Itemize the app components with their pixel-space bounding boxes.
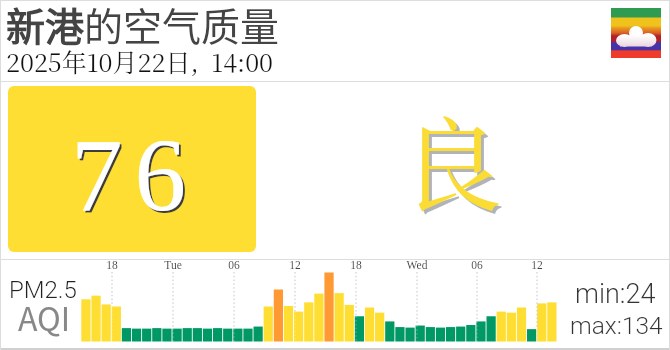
staticText: 06 [452,259,502,272]
staticText: Wed [392,259,442,272]
button[interactable]: aqicn.org logo [611,8,661,58]
staticText: 良 [400,86,502,233]
staticText: 18 [331,259,381,272]
staticText: min:24 [575,278,656,310]
staticText: 06 [209,259,259,272]
staticText: Tue [148,259,198,272]
staticText: 12 [512,259,562,272]
staticText: max:134 [570,311,663,340]
staticText: 76 [67,120,194,234]
button[interactable]: 76 [8,86,256,252]
staticText: 良 [403,89,505,236]
staticText: 18 [87,259,137,272]
staticText: PM2.5 [9,276,77,304]
staticText: AQI [18,294,71,340]
staticText: 76 [65,118,192,232]
staticText: 2025年10月22日, 14:00 [6,43,274,79]
staticText: 12 [270,259,320,272]
staticText: 新港的空气质量 [6,0,280,52]
